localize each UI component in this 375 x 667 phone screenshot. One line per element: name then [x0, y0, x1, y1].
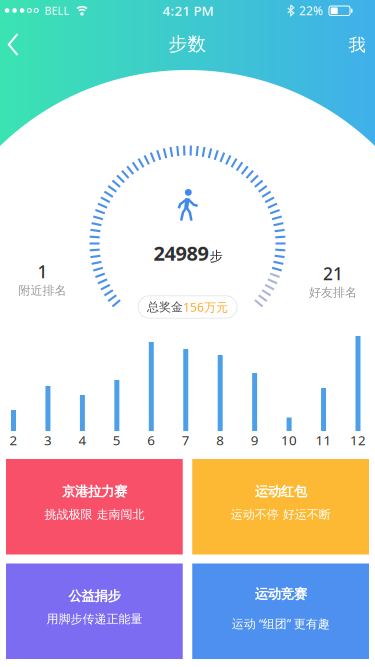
staticText: 我	[348, 34, 365, 56]
staticText: 1	[37, 260, 47, 283]
staticText: 附近排名	[18, 283, 66, 298]
button[interactable]: 我	[340, 24, 373, 66]
staticText: 2	[9, 431, 17, 449]
staticText: 步	[209, 248, 222, 264]
button[interactable]: 京港拉力赛	[6, 459, 183, 554]
staticText: 挑战极限 走南闯北	[44, 507, 144, 522]
staticText: 9	[251, 431, 259, 449]
staticText: 7	[182, 431, 190, 449]
staticText: 21	[323, 262, 343, 285]
staticText: 156万元	[183, 299, 228, 315]
staticText: 4	[78, 431, 86, 449]
staticText: 4:21 PM	[162, 2, 213, 19]
staticText: 24989	[153, 240, 208, 266]
staticText: 步数	[168, 32, 206, 55]
staticText: 22%	[299, 2, 323, 18]
button[interactable]: 公益捐步	[6, 563, 183, 659]
staticText: 6	[147, 431, 155, 449]
staticText: 好友排名	[309, 285, 357, 300]
staticText: 运动不停 好运不断	[231, 507, 331, 522]
button[interactable]: 运动红包	[192, 459, 369, 554]
staticText: 8	[216, 431, 224, 449]
staticText: 10	[281, 431, 297, 449]
staticText: 公益捐步	[68, 588, 120, 604]
staticText: 运动 “组团” 更有趣	[232, 615, 330, 631]
staticText: 运动红包	[255, 483, 307, 500]
staticText: 用脚步传递正能量	[46, 612, 142, 626]
staticText: 运动竞赛	[255, 586, 307, 602]
button[interactable]: Back	[4, 22, 24, 67]
staticText: 总奖金	[147, 300, 183, 314]
staticText: 12	[350, 431, 366, 449]
staticText: 5	[113, 431, 121, 449]
staticText: 3	[44, 431, 52, 449]
button[interactable]: 运动竞赛	[192, 563, 369, 659]
staticText: BELL	[44, 3, 69, 18]
staticText: 京港拉力赛	[62, 483, 127, 500]
staticText: 11	[316, 431, 332, 449]
